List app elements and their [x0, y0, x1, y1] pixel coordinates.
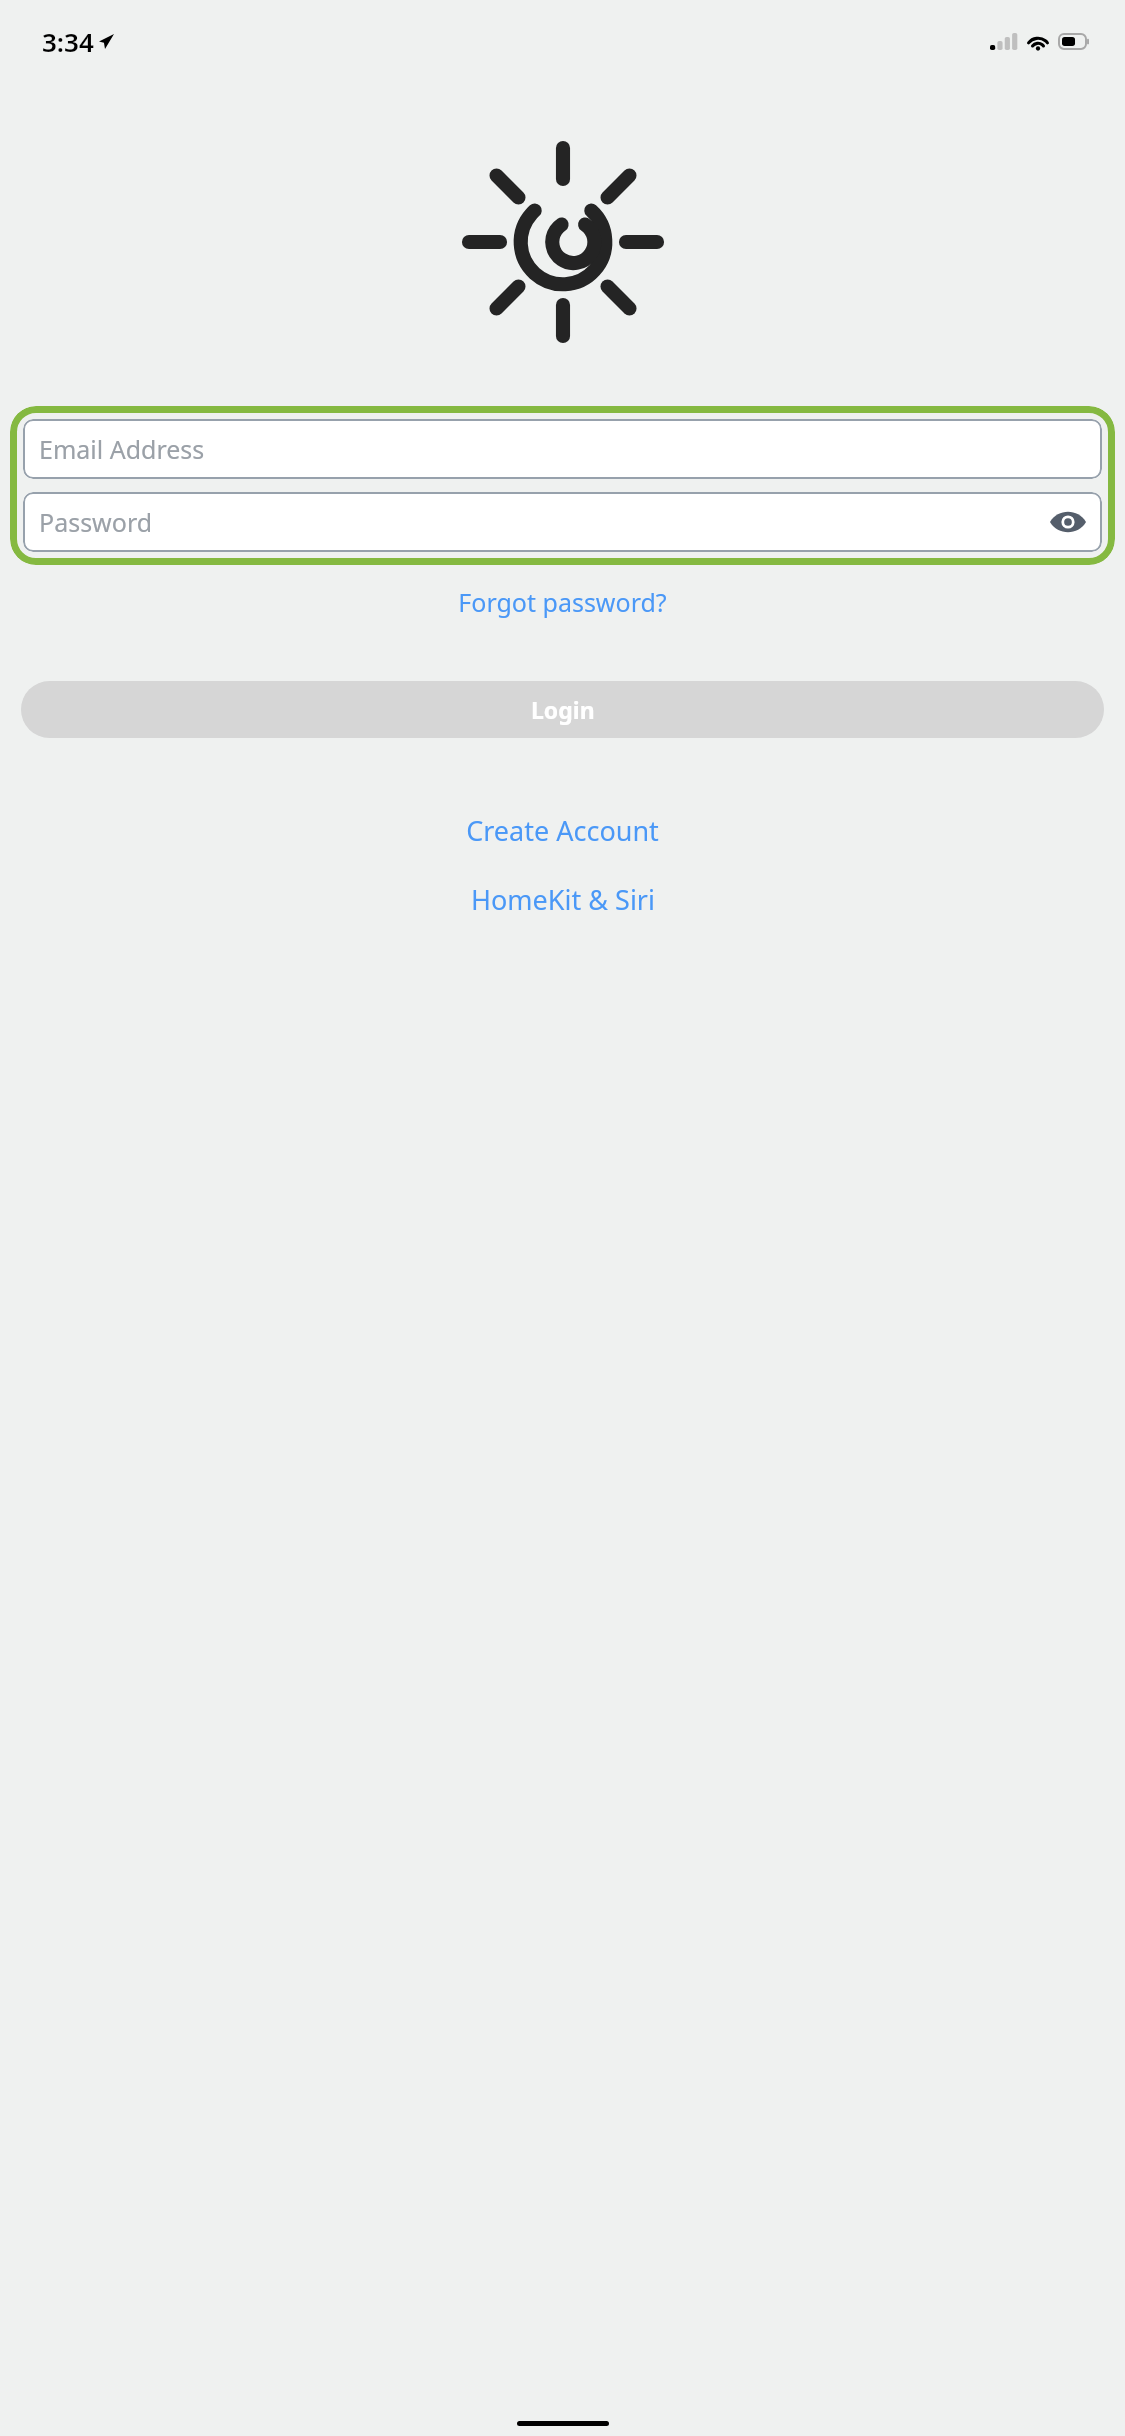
button[interactable]: Forgot password?: [446, 579, 679, 625]
button[interactable]: HomeKit & Siri: [459, 875, 667, 924]
staticText: Login: [531, 694, 595, 725]
button[interactable]: Password: [23, 492, 1102, 552]
button[interactable]: Email Address: [23, 419, 1102, 479]
staticText: Email Address: [39, 432, 205, 466]
button[interactable]: Create Account: [454, 806, 671, 855]
staticText: Create Account: [466, 812, 659, 849]
staticText: Forgot password?: [458, 585, 667, 619]
button[interactable]: Show password: [1046, 500, 1090, 544]
staticText: Password: [39, 505, 153, 539]
staticText: 3:34: [42, 24, 94, 59]
staticText: HomeKit & Siri: [471, 881, 655, 918]
button[interactable]: Login: [21, 681, 1104, 738]
